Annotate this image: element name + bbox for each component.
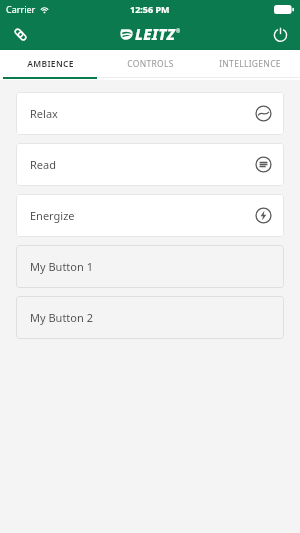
staticText: INTELLIGENCE [219,58,281,70]
staticText: AMBIENCE [27,58,74,70]
staticText: My Button 1 [30,259,93,274]
staticText: LEITZ [135,24,176,44]
staticText: Energize [30,208,75,223]
button[interactable]: My Button 1 [16,245,284,288]
staticText: 12:56 PM [130,3,170,15]
button[interactable]: INTELLIGENCE [200,50,300,77]
staticText: Carrier [6,3,36,15]
button[interactable]: Power [264,18,296,50]
staticText: CONTROLS [127,58,174,70]
button[interactable]: AMBIENCE [0,50,100,77]
button[interactable]: CONTROLS [100,50,200,77]
button[interactable]: Read [16,143,284,186]
staticText: My Button 2 [30,310,93,325]
button[interactable]: Relax [16,92,284,135]
staticText: ® [176,28,181,35]
button[interactable]: Link [4,18,36,50]
staticText: Relax [30,106,58,121]
button[interactable]: My Button 2 [16,296,284,339]
staticText: Read [30,157,56,172]
button[interactable]: Energize [16,194,284,237]
